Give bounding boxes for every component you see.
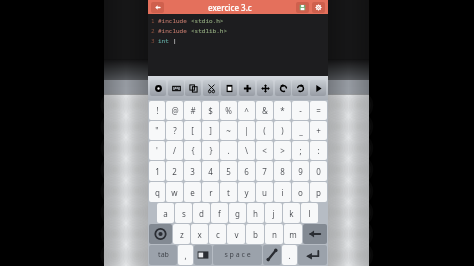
button[interactable]: [ [184, 121, 201, 140]
button[interactable]: Backspace [303, 224, 327, 244]
button[interactable]: $ [202, 101, 219, 120]
button[interactable]: z [173, 224, 190, 244]
staticText: & [262, 105, 268, 116]
button[interactable]: Save [296, 2, 309, 13]
button[interactable]: f [211, 203, 228, 223]
button[interactable]: Record [150, 80, 166, 96]
button[interactable]: Undo [275, 80, 291, 96]
staticText: t [227, 187, 230, 198]
button[interactable]: tab [149, 245, 177, 265]
button[interactable]: - [292, 101, 309, 120]
button[interactable]: 8 [274, 161, 291, 181]
button[interactable]: , [178, 245, 193, 265]
button[interactable]: ? [166, 121, 183, 140]
button[interactable]: / [166, 141, 183, 160]
staticText: p [316, 187, 321, 198]
button[interactable]: x [191, 224, 208, 244]
button[interactable]: Paste [221, 80, 237, 96]
button[interactable]: Settings [312, 2, 325, 13]
button[interactable]: _ [292, 121, 309, 140]
staticText: h [253, 208, 258, 219]
staticText: # [190, 105, 196, 116]
button[interactable]: 1 [149, 161, 165, 181]
button[interactable]: | [238, 121, 255, 140]
button[interactable]: # [184, 101, 201, 120]
button[interactable]: : [310, 141, 327, 160]
button[interactable]: > [274, 141, 291, 160]
button[interactable]: ) [274, 121, 291, 140]
button[interactable]: * [274, 101, 291, 120]
staticText: 5 [226, 166, 231, 177]
button[interactable]: ' [149, 141, 165, 160]
button[interactable]: Back [151, 2, 164, 13]
staticText: k [289, 208, 294, 219]
button[interactable]: < [256, 141, 273, 160]
button[interactable]: j [265, 203, 282, 223]
button[interactable]: t [220, 182, 237, 202]
button[interactable]: p [310, 182, 327, 202]
button[interactable]: ] [202, 121, 219, 140]
button[interactable]: Run [310, 80, 326, 96]
button[interactable]: Enter [298, 245, 327, 265]
button[interactable]: 4 [202, 161, 219, 181]
button[interactable]: e [184, 182, 201, 202]
button[interactable]: g [229, 203, 246, 223]
button[interactable]: { [184, 141, 201, 160]
button[interactable]: n [265, 224, 283, 244]
button[interactable]: w [166, 182, 183, 202]
button[interactable]: Copy [185, 80, 201, 96]
button[interactable]: Redo [292, 80, 308, 96]
button[interactable]: Add [239, 80, 255, 96]
button[interactable]: 3 [184, 161, 201, 181]
button[interactable]: b [246, 224, 264, 244]
button[interactable]: = [310, 101, 327, 120]
button[interactable]: k [283, 203, 300, 223]
button[interactable]: Shift [149, 224, 172, 244]
button[interactable]: i [274, 182, 291, 202]
button[interactable]: ^ [238, 101, 255, 120]
button[interactable]: ( [256, 121, 273, 140]
button[interactable]: . [220, 141, 237, 160]
button[interactable]: v [227, 224, 245, 244]
button[interactable]: 0 [310, 161, 327, 181]
button[interactable]: Move cursor [263, 245, 281, 265]
button[interactable]: 2 [166, 161, 183, 181]
button[interactable]: 9 [292, 161, 309, 181]
button[interactable]: Keyboard [168, 80, 184, 96]
button[interactable]: q [149, 182, 165, 202]
button[interactable]: " [149, 121, 165, 140]
button[interactable]: } [202, 141, 219, 160]
button[interactable]: r [202, 182, 219, 202]
button[interactable]: 7 [256, 161, 273, 181]
staticText: q [155, 187, 160, 198]
button[interactable]: a [157, 203, 174, 223]
button[interactable]: d [193, 203, 210, 223]
button[interactable]: m [284, 224, 302, 244]
staticText: + [316, 125, 321, 136]
button[interactable]: & [256, 101, 273, 120]
staticText: 3 [151, 37, 155, 45]
button[interactable]: s [175, 203, 192, 223]
staticText: ? [173, 125, 177, 136]
button[interactable]: o [292, 182, 309, 202]
button[interactable]: . [282, 245, 297, 265]
button[interactable]: \ [238, 141, 255, 160]
button[interactable]: Move [257, 80, 273, 96]
button[interactable]: ; [292, 141, 309, 160]
button[interactable]: Switch keyboard [194, 245, 212, 265]
button[interactable]: c [209, 224, 226, 244]
button[interactable]: @ [166, 101, 183, 120]
button[interactable]: ~ [220, 121, 237, 140]
button[interactable]: u [256, 182, 273, 202]
button[interactable]: + [310, 121, 327, 140]
button[interactable]: l [301, 203, 318, 223]
button[interactable]: 5 [220, 161, 237, 181]
button[interactable]: Cut [203, 80, 219, 96]
button[interactable]: s p a c e [213, 245, 262, 265]
button[interactable]: 6 [238, 161, 255, 181]
button[interactable]: y [238, 182, 255, 202]
staticText: 2 [172, 166, 177, 177]
button[interactable]: % [220, 101, 237, 120]
button[interactable]: h [247, 203, 264, 223]
button[interactable]: ! [149, 101, 165, 120]
